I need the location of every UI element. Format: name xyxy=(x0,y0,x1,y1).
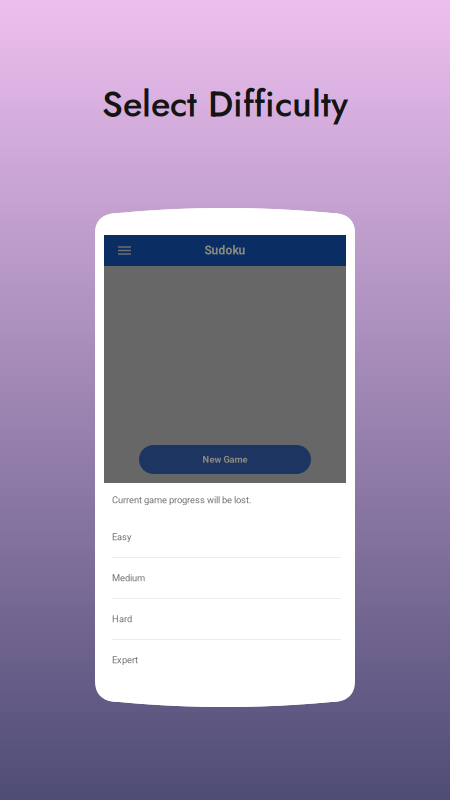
staticText: Expert xyxy=(112,654,138,665)
button[interactable]: New Game xyxy=(139,445,311,474)
staticText: Easy xyxy=(112,531,131,542)
button[interactable]: Easy xyxy=(104,517,346,558)
button[interactable]: Hard xyxy=(104,599,346,640)
button[interactable]: Expert xyxy=(104,640,346,681)
button[interactable]: Open navigation menu xyxy=(104,235,137,266)
staticText: Medium xyxy=(112,572,145,583)
staticText: New Game xyxy=(202,454,247,465)
staticText: Hard xyxy=(112,613,132,624)
staticText: Current game progress will be lost. xyxy=(112,494,251,505)
staticText: Sudoku xyxy=(204,243,245,258)
staticText: Select Difficulty xyxy=(102,78,348,130)
button[interactable]: Medium xyxy=(104,558,346,599)
